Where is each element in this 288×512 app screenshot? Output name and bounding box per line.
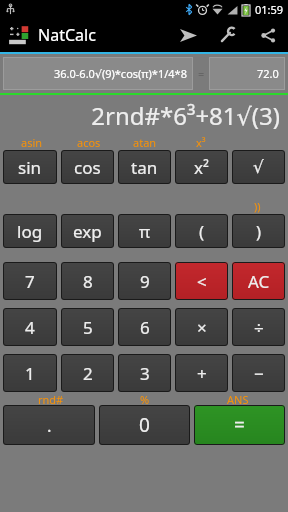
button[interactable]: exp — [61, 214, 114, 248]
staticText: + — [197, 362, 207, 385]
button[interactable]: log — [3, 214, 57, 248]
staticText: 01:59 — [255, 2, 284, 17]
staticText: sin — [18, 156, 42, 179]
staticText: 1 — [25, 362, 35, 385]
staticText: cos — [74, 156, 101, 179]
button[interactable]: Settings — [208, 18, 248, 52]
button[interactable]: 36.0-6.0√(9)*cos(π)*1/4*8 — [3, 57, 187, 90]
button[interactable]: + — [175, 354, 228, 392]
staticText: 0 — [139, 412, 150, 438]
staticText: ) — [256, 220, 262, 243]
staticText: rnd# — [38, 392, 64, 405]
staticText: x³ — [196, 135, 206, 150]
button[interactable]: cos — [61, 150, 114, 184]
button[interactable]: − — [232, 354, 285, 392]
staticText: 6 — [140, 316, 150, 339]
button[interactable]: 7 — [3, 262, 57, 300]
staticText: π — [139, 220, 151, 243]
button[interactable]: 9 — [118, 262, 171, 300]
button[interactable]: 4 — [3, 308, 57, 346]
staticText: 5 — [83, 316, 93, 339]
staticText: 72.0 — [257, 66, 279, 81]
staticText: 36.0-6.0√(9)*cos(π)*1/4*8 — [54, 66, 187, 81]
staticText: 4 — [25, 316, 35, 339]
button[interactable]: ) — [232, 214, 285, 248]
button[interactable]: 3 — [118, 354, 171, 392]
button[interactable]: √ — [232, 150, 285, 184]
staticText: tan — [131, 156, 158, 179]
button[interactable]: × — [175, 308, 228, 346]
staticText: NatCalc — [38, 24, 96, 46]
button[interactable]: x² — [175, 150, 228, 184]
staticText: log — [17, 220, 43, 243]
button[interactable]: 2 — [61, 354, 114, 392]
staticText: exp — [73, 220, 102, 243]
button[interactable]: sin — [3, 150, 57, 184]
staticText: atan — [133, 135, 157, 150]
button[interactable]: . — [3, 405, 95, 445]
staticText: ÷ — [254, 316, 264, 339]
staticText: % — [140, 392, 150, 405]
staticText: acos — [77, 135, 101, 150]
staticText: x² — [194, 156, 209, 179]
staticText: − — [254, 362, 264, 385]
staticText: ( — [199, 220, 205, 243]
button[interactable]: < — [175, 262, 228, 300]
staticText: = — [198, 66, 205, 81]
button[interactable]: Share — [248, 18, 288, 52]
button[interactable]: ( — [175, 214, 228, 248]
staticText: √ — [253, 157, 264, 177]
button[interactable]: tan — [118, 150, 171, 184]
button[interactable]: 8 — [61, 262, 114, 300]
staticText: asin — [21, 135, 43, 150]
staticText: 9 — [140, 270, 150, 293]
button[interactable]: 1 — [3, 354, 57, 392]
button[interactable]: 0 — [99, 405, 190, 445]
staticText: = — [234, 412, 245, 438]
button[interactable]: Send — [168, 18, 208, 52]
button[interactable]: AC — [232, 262, 285, 300]
staticText: 8 — [83, 270, 93, 293]
staticText: ANS — [227, 392, 249, 405]
staticText: AC — [248, 270, 270, 293]
button[interactable]: = — [194, 405, 285, 445]
button[interactable]: π — [118, 214, 171, 248]
staticText: . — [47, 414, 52, 437]
button[interactable]: 72.0 — [209, 57, 279, 90]
staticText: 3 — [140, 362, 150, 385]
button[interactable]: 6 — [118, 308, 171, 346]
staticText: 7 — [25, 270, 35, 293]
button[interactable]: ÷ — [232, 308, 285, 346]
staticText: × — [197, 316, 207, 339]
staticText: )) — [254, 199, 261, 214]
staticText: 2rnd#*6³+81√(3) — [91, 99, 280, 132]
staticText: 2 — [83, 362, 93, 385]
button[interactable]: 5 — [61, 308, 114, 346]
staticText: < — [197, 270, 207, 293]
